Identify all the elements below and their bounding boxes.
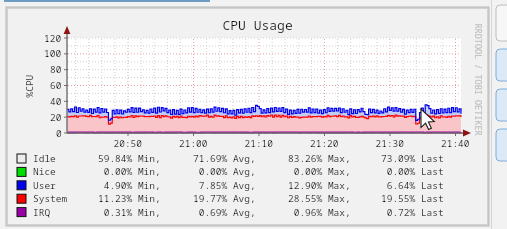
button[interactable]: CPU usage graph <box>0 0 507 229</box>
